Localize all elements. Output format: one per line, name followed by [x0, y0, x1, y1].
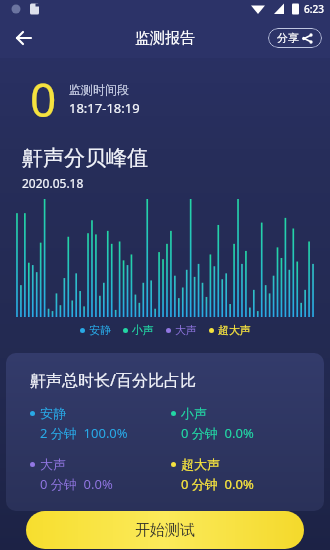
- staticText: 超大声: [181, 456, 220, 472]
- staticText: 安静: [40, 405, 66, 421]
- staticText: 2 分钟 100.0%: [40, 424, 128, 442]
- staticText: 大声: [40, 456, 66, 472]
- staticText: 小声: [181, 405, 207, 421]
- staticText: 小声: [132, 323, 154, 337]
- staticText: 鼾声分贝峰值: [22, 145, 148, 171]
- button[interactable]: 分享: [268, 28, 322, 48]
- staticText: 6:23: [304, 2, 324, 16]
- staticText: 超大声: [218, 323, 251, 337]
- staticText: 鼾声总时长/百分比占比: [30, 369, 196, 391]
- staticText: 2020.05.18: [22, 175, 84, 191]
- staticText: 安静: [89, 323, 111, 337]
- staticText: 18:17-18:19: [69, 99, 140, 117]
- button[interactable]: 开始测试: [26, 511, 304, 549]
- staticText: 开始测试: [135, 521, 195, 540]
- staticText: 大声: [175, 323, 197, 337]
- staticText: 0: [30, 68, 57, 131]
- staticText: 0 分钟 0.0%: [181, 475, 254, 493]
- staticText: 0 分钟 0.0%: [181, 424, 254, 442]
- staticText: 监测报告: [135, 29, 195, 48]
- button[interactable]: Back: [8, 22, 40, 54]
- staticText: 0 分钟 0.0%: [40, 475, 113, 493]
- staticText: 监测时间段: [69, 82, 129, 97]
- staticText: 分享: [277, 31, 299, 45]
